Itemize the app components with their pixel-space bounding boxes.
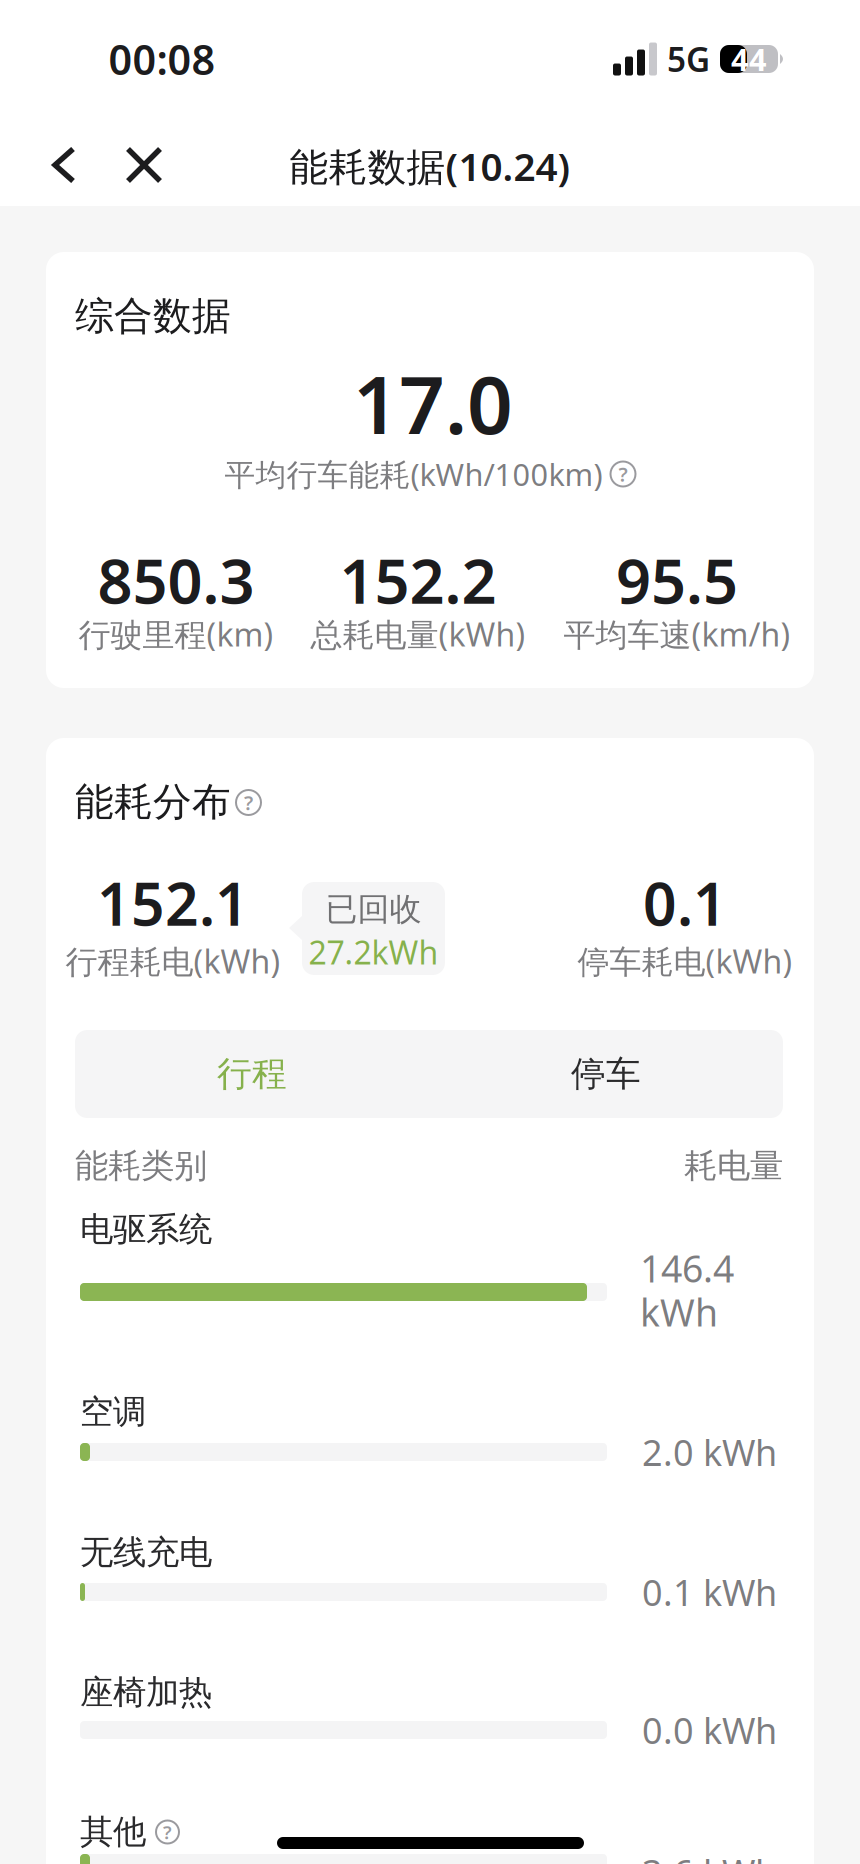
staticText: 总耗电量(kWh): [310, 613, 525, 655]
staticText: 27.2kWh: [308, 931, 438, 973]
button[interactable]: Back: [32, 133, 96, 197]
staticText: 电驱系统: [80, 1209, 212, 1250]
staticText: 0.1 kWh: [642, 1568, 777, 1616]
staticText: ?: [163, 1820, 172, 1844]
staticText: 5G: [667, 37, 710, 81]
staticText: 850.3: [97, 539, 254, 621]
staticText: 3.6 kWh: [642, 1848, 777, 1864]
staticText: 44: [731, 39, 767, 79]
button[interactable]: About energy distribution: [236, 790, 261, 815]
staticText: 行驶里程(km): [78, 613, 273, 655]
staticText: 152.2: [339, 539, 496, 621]
staticText: 座椅加热: [80, 1672, 212, 1713]
staticText: ?: [618, 461, 627, 487]
button[interactable]: About average driving consumption: [610, 461, 635, 486]
staticText: 17.0: [353, 350, 513, 456]
staticText: 95.5: [616, 539, 738, 621]
staticText: 已回收: [325, 890, 421, 929]
button[interactable]: Close: [112, 133, 176, 197]
staticText: ?: [244, 789, 253, 816]
button[interactable]: About other consumption: [156, 1820, 179, 1843]
staticText: 停车: [571, 1053, 641, 1095]
staticText: 耗电量: [684, 1145, 783, 1186]
staticText: 152.1: [97, 864, 249, 942]
staticText: 0.1: [643, 864, 727, 942]
staticText: 平均行车能耗(kWh/100km): [224, 454, 602, 494]
staticText: 0.0 kWh: [642, 1706, 777, 1754]
staticText: kWh: [640, 1287, 718, 1337]
staticText: 平均车速(km/h): [563, 613, 790, 655]
staticText: 行程: [217, 1053, 287, 1095]
staticText: 行程耗电(kWh): [65, 940, 280, 982]
staticText: 停车耗电(kWh): [577, 940, 792, 982]
button[interactable]: 行程: [75, 1030, 429, 1118]
button[interactable]: 停车: [429, 1030, 783, 1118]
staticText: 能耗分布: [75, 778, 231, 826]
staticText: 其他: [80, 1811, 146, 1852]
staticText: 综合数据: [75, 292, 231, 340]
staticText: 空调: [80, 1391, 146, 1432]
staticText: 00:08: [108, 32, 215, 86]
staticText: 无线充电: [80, 1532, 212, 1573]
staticText: 146.4: [640, 1243, 734, 1293]
staticText: 能耗数据(10.24): [289, 140, 570, 192]
staticText: 2.0 kWh: [642, 1428, 777, 1476]
staticText: 能耗类别: [75, 1145, 207, 1186]
